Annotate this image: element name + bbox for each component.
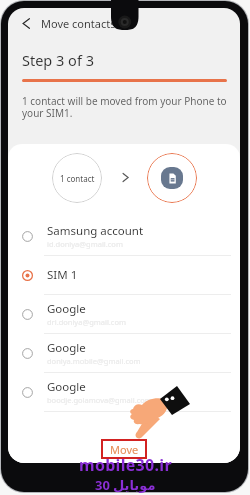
staticText: Move contacts [41, 16, 116, 31]
staticText: 30 [95, 476, 110, 494]
staticText: doniya.mobile@gmail.com [47, 356, 141, 366]
button[interactable]: SIM 1 [8, 256, 240, 295]
button[interactable]: Back [8, 8, 36, 38]
staticText: Google [47, 301, 86, 317]
button[interactable]: Google [8, 334, 240, 373]
staticText: Samsung account [47, 223, 144, 239]
staticText: 1 contact will be moved from your Phone … [22, 94, 232, 120]
staticText: Step 3 of 3 [22, 50, 94, 70]
button[interactable]: Samsung account [8, 217, 240, 256]
staticText: boodje.golamova@gmail.com [47, 395, 152, 405]
button[interactable]: Move [101, 439, 147, 459]
staticText: id.doniya@gmail.com [47, 239, 123, 249]
staticText: SIM 1 [47, 267, 78, 283]
staticText: موبایل [113, 478, 156, 493]
staticText: mobile30.ir [79, 454, 172, 476]
staticText: 1 contact [60, 173, 95, 184]
staticText: Google [47, 379, 86, 395]
button[interactable]: Google [8, 373, 240, 412]
staticText: Move [110, 442, 139, 457]
staticText: dri.doniya@gmail.com [47, 317, 127, 327]
button[interactable]: Google [8, 295, 240, 334]
staticText: Google [47, 340, 86, 356]
